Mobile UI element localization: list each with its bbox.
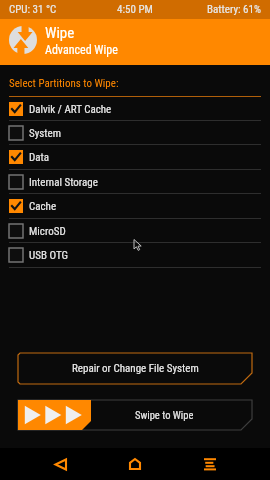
staticText: Select Partitions to Wipe: (9, 77, 119, 90)
staticText: Cache (29, 200, 57, 213)
staticText: CPU: 31 °C (9, 3, 57, 16)
button[interactable]: System (0, 121, 270, 145)
staticText: System (29, 127, 61, 140)
staticText: Swipe to Wipe (135, 409, 194, 421)
button[interactable]: Swipe to Wipe (18, 400, 252, 430)
button[interactable]: Cache (0, 194, 270, 218)
staticText: Advanced Wipe (45, 43, 118, 57)
button[interactable]: Internal Storage (0, 170, 270, 194)
staticText: Dalvik / ART Cache (29, 103, 112, 116)
button[interactable]: Menu (192, 448, 228, 480)
staticText: Repair or Change File System (72, 362, 199, 375)
staticText: MicroSD (29, 225, 66, 238)
button[interactable]: Home (117, 448, 153, 480)
staticText: USB OTG (29, 249, 68, 262)
staticText: Data (29, 151, 50, 164)
staticText: Wipe (45, 24, 75, 42)
button[interactable]: Data (0, 145, 270, 169)
button[interactable]: USB OTG (0, 243, 270, 267)
staticText: Battery: 61% (207, 3, 261, 16)
staticText: Internal Storage (29, 176, 98, 189)
button[interactable]: Back (42, 448, 78, 480)
staticText: 4:50 PM (117, 3, 153, 16)
button[interactable]: MicroSD (0, 219, 270, 243)
button[interactable]: Repair or Change File System (18, 353, 252, 384)
button[interactable]: Dalvik / ART Cache (0, 97, 270, 121)
